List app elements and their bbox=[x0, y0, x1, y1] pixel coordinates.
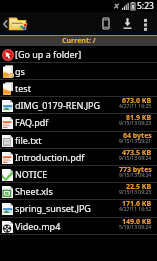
button[interactable]: NOTICE bbox=[0, 166, 157, 183]
button[interactable]: gs bbox=[0, 63, 157, 80]
staticText: Current: / bbox=[62, 36, 96, 46]
button[interactable]: dIMG_0179-REN.JPG bbox=[0, 97, 157, 114]
staticText: NOTICE bbox=[15, 168, 48, 180]
staticText: 64 bytes bbox=[123, 131, 152, 141]
staticText: 673.0 KB bbox=[122, 96, 152, 106]
staticText: file.txt bbox=[15, 134, 42, 146]
button[interactable]: spring_sunset.JPG bbox=[0, 200, 157, 217]
staticText: 473.5 KB bbox=[122, 148, 152, 158]
staticText: 22.5 KB bbox=[126, 182, 152, 192]
staticText: 5:23 bbox=[137, 0, 154, 12]
staticText: Introduction.pdf bbox=[15, 151, 85, 163]
staticText: 4/27/11 16:52 bbox=[119, 206, 152, 213]
staticText: 81.9 KB bbox=[126, 113, 152, 123]
button[interactable]: Storage bbox=[97, 12, 114, 35]
button[interactable]: FAQ.pdf bbox=[0, 114, 157, 131]
staticText: dIMG_0179-REN.JPG bbox=[15, 99, 101, 111]
button[interactable]: [Go up a folder] bbox=[0, 46, 157, 63]
button[interactable]: test bbox=[0, 80, 157, 97]
staticText: 4/27/11 16:25 bbox=[119, 103, 152, 110]
staticText: Sheet.xls bbox=[15, 185, 53, 197]
staticText: 9/15/13 09:23 bbox=[119, 189, 152, 196]
staticText: 171.6 KB bbox=[122, 199, 152, 209]
staticText: 9/15/13 09:23 bbox=[119, 120, 152, 127]
staticText: gs bbox=[15, 65, 25, 77]
button[interactable]: Download bbox=[118, 12, 136, 35]
staticText: 773 bytes bbox=[119, 165, 152, 175]
staticText: 9/15/13 09:21 bbox=[119, 138, 152, 145]
staticText: test bbox=[15, 82, 31, 94]
staticText: Video.mp4 bbox=[15, 220, 61, 232]
staticText: FAQ.pdf bbox=[15, 116, 49, 128]
staticText: [Go up a folder] bbox=[15, 48, 82, 60]
button[interactable]: Up one level bbox=[0, 12, 34, 35]
button[interactable]: Sheet.xls bbox=[0, 183, 157, 200]
button[interactable]: file.txt bbox=[0, 132, 157, 149]
staticText: 5/19/13 09:24 bbox=[119, 224, 152, 231]
button[interactable]: More options bbox=[137, 12, 154, 35]
staticText: 149.0 KB bbox=[122, 217, 152, 227]
button[interactable]: Video.mp4 bbox=[0, 218, 157, 235]
staticText: spring_sunset.JPG bbox=[15, 202, 91, 214]
staticText: 9/15/13 09:24 bbox=[119, 155, 152, 162]
staticText: 9/15/13 09:24 bbox=[119, 172, 152, 179]
button[interactable]: Introduction.pdf bbox=[0, 149, 157, 166]
